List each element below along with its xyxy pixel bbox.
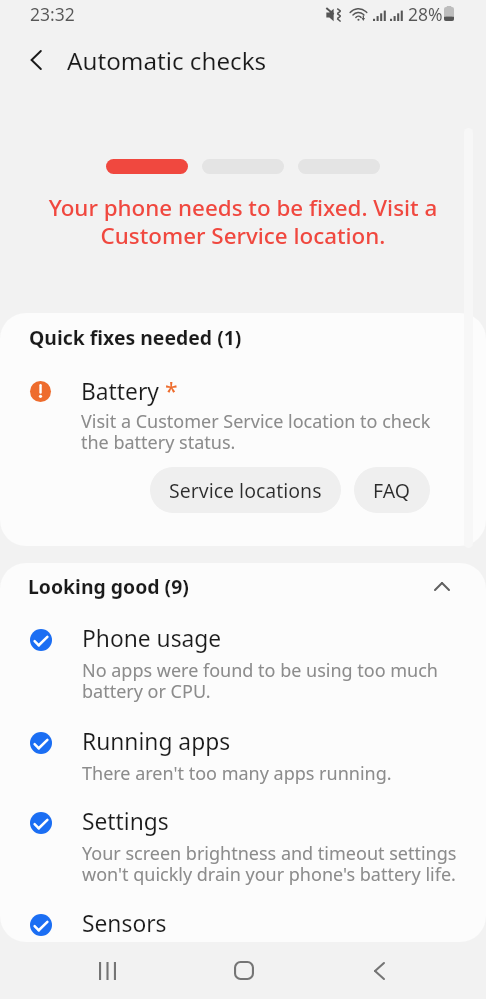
staticText: No apps were found to be using too much … xyxy=(82,658,438,703)
button[interactable]: Collapse xyxy=(425,569,459,603)
staticText: Service locations xyxy=(169,477,322,504)
button[interactable]: Recent apps xyxy=(70,942,145,999)
button[interactable]: Back xyxy=(342,942,417,999)
button[interactable]: Phone usage xyxy=(0,623,486,703)
button[interactable]: Settings xyxy=(0,806,486,886)
staticText: * xyxy=(165,376,178,407)
button[interactable]: Back xyxy=(14,38,58,82)
staticText: Settings xyxy=(82,806,169,837)
button[interactable]: Sensors xyxy=(0,908,486,939)
button[interactable]: Service locations xyxy=(150,467,341,513)
staticText: FAQ xyxy=(373,477,411,504)
staticText: Battery xyxy=(81,376,165,407)
staticText: Your phone needs to be fixed. Visit a Cu… xyxy=(16,192,470,250)
staticText: There aren't too many apps running. xyxy=(82,761,392,786)
staticText: 28% xyxy=(408,2,443,26)
staticText: Quick fixes needed (1) xyxy=(29,324,242,350)
button[interactable]: Running apps xyxy=(0,726,486,786)
staticText: Running apps xyxy=(82,726,231,757)
staticText: Phone usage xyxy=(82,623,222,654)
staticText: Looking good (9) xyxy=(28,573,189,599)
button[interactable]: FAQ xyxy=(354,467,430,513)
staticText: Visit a Customer Service location to che… xyxy=(81,409,431,454)
staticText: Sensors xyxy=(82,908,167,939)
button[interactable]: Home xyxy=(206,942,281,999)
staticText: Your screen brightness and timeout setti… xyxy=(82,841,457,886)
staticText: Automatic checks xyxy=(67,44,267,77)
staticText: 23:32 xyxy=(30,2,75,26)
